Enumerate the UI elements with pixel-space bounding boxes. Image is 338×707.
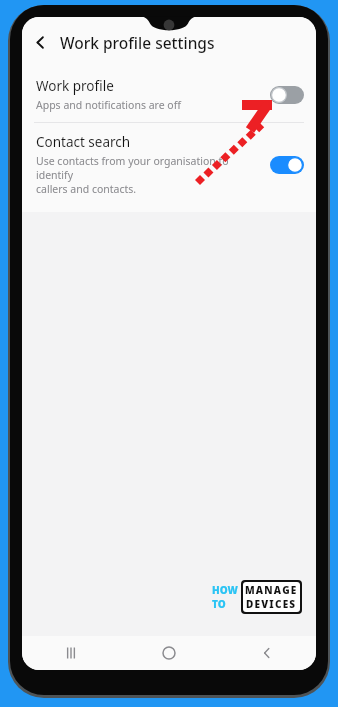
staticText: Apps and notifications are off: [36, 98, 181, 112]
staticText: Work profile settings: [60, 32, 215, 53]
staticText: Use contacts from your organisation to i…: [36, 154, 262, 196]
button[interactable]: Recents: [22, 636, 120, 670]
staticText: Contact search: [36, 133, 131, 151]
staticText: MANAGE: [245, 583, 298, 597]
button[interactable]: Toggle off: [270, 86, 304, 104]
button[interactable]: Contact search: [22, 123, 316, 206]
button[interactable]: Work profile: [22, 67, 316, 122]
button[interactable]: Toggle on: [270, 156, 304, 174]
button[interactable]: Back: [25, 27, 55, 57]
staticText: DEVICES: [246, 597, 297, 611]
button[interactable]: Back: [218, 636, 316, 670]
staticText: Work profile: [36, 77, 114, 95]
staticText: HOW: [212, 583, 238, 597]
button[interactable]: Home: [120, 636, 218, 670]
staticText: TO: [212, 597, 226, 611]
